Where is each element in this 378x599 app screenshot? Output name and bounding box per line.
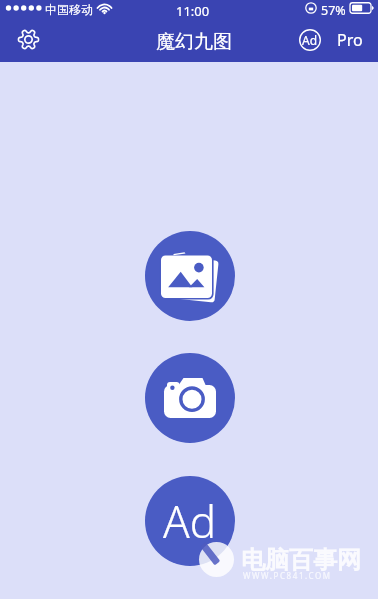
staticText: 魔幻九图 [156,30,232,54]
staticText: 电脑百事网 [241,545,361,575]
button[interactable]: Camera [145,353,235,443]
staticText: Ad [302,32,318,48]
button[interactable]: Ad [299,29,363,51]
staticText: 57% [321,2,346,19]
button[interactable]: Ad [145,476,235,566]
button[interactable]: Gallery [145,231,235,321]
staticText: 中国移动 [45,2,93,17]
staticText: Ad [163,491,217,551]
button[interactable]: Settings [12,23,44,55]
staticText: 11:00 [176,2,210,20]
staticText: WWW.PC841.COM [243,570,332,581]
staticText: Pro [337,29,363,51]
